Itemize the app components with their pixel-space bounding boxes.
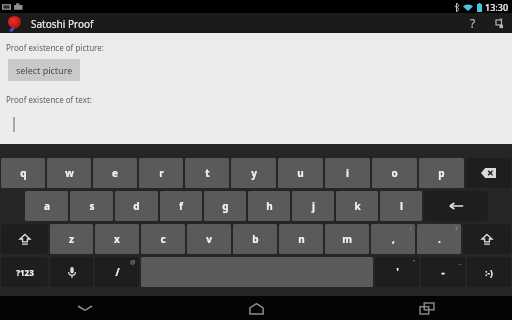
button[interactable]: enter xyxy=(424,191,488,221)
staticText: p xyxy=(438,166,445,180)
staticText: d xyxy=(133,199,140,213)
button[interactable]: z xyxy=(50,224,93,254)
staticText: , xyxy=(392,232,395,246)
staticText: l xyxy=(400,199,403,213)
staticText: _ xyxy=(459,258,462,266)
staticText: " xyxy=(413,258,416,266)
button[interactable]: v xyxy=(187,224,231,254)
button[interactable]: c xyxy=(141,224,185,254)
button[interactable]: x xyxy=(95,224,139,254)
staticText: b xyxy=(252,232,259,246)
staticText: s xyxy=(89,199,95,213)
staticText: m xyxy=(342,232,352,246)
button[interactable]: r xyxy=(139,158,183,188)
button[interactable]: e xyxy=(93,158,137,188)
button[interactable]: Recent apps xyxy=(404,296,450,320)
button[interactable]: Help xyxy=(460,13,486,33)
staticText: / xyxy=(115,265,120,279)
button[interactable]: i xyxy=(325,158,370,188)
staticText: f xyxy=(179,199,183,213)
button[interactable]: / xyxy=(95,257,139,287)
staticText: x xyxy=(114,232,120,246)
button[interactable]: y xyxy=(231,158,276,188)
staticText: u xyxy=(297,166,304,180)
button[interactable]: - xyxy=(421,257,465,287)
button[interactable]: select picture xyxy=(8,59,80,81)
staticText: ?123 xyxy=(16,267,34,278)
button[interactable]: Home xyxy=(233,296,279,320)
staticText: e xyxy=(112,166,118,180)
staticText: k xyxy=(354,199,361,213)
staticText: select picture xyxy=(16,64,73,76)
staticText: t xyxy=(205,166,210,180)
button[interactable]: ' xyxy=(375,257,419,287)
button[interactable]: More options xyxy=(486,13,512,33)
button[interactable]: . xyxy=(417,224,461,254)
staticText: j xyxy=(312,199,315,213)
staticText: w xyxy=(65,166,74,180)
button[interactable]: h xyxy=(248,191,290,221)
staticText: c xyxy=(160,232,166,246)
button[interactable]: d xyxy=(115,191,158,221)
button[interactable]: l xyxy=(380,191,422,221)
staticText: y xyxy=(251,166,257,180)
button[interactable]: q xyxy=(1,158,45,188)
button[interactable]: n xyxy=(279,224,323,254)
button[interactable]: backspace xyxy=(466,158,511,188)
button[interactable]: g xyxy=(204,191,246,221)
button[interactable]: u xyxy=(278,158,323,188)
button[interactable]: w xyxy=(47,158,91,188)
staticText: 13:30 xyxy=(485,1,509,13)
staticText: z xyxy=(69,232,74,246)
button[interactable]: :-) xyxy=(467,257,511,287)
button[interactable]: k xyxy=(336,191,378,221)
button[interactable]: s xyxy=(70,191,113,221)
staticText: g xyxy=(222,199,229,213)
staticText: n xyxy=(298,232,305,246)
button[interactable]: f xyxy=(160,191,202,221)
button[interactable]: shift xyxy=(463,224,511,254)
staticText: ! xyxy=(410,225,412,233)
staticText: Proof existence of text: xyxy=(6,94,92,105)
button[interactable]: mic xyxy=(50,257,93,287)
staticText: :-) xyxy=(485,267,493,278)
button[interactable]: o xyxy=(372,158,417,188)
staticText: @ xyxy=(130,258,136,266)
button[interactable]: m xyxy=(325,224,369,254)
staticText: o xyxy=(391,166,398,180)
staticText: r xyxy=(159,166,164,180)
button[interactable] xyxy=(0,116,512,138)
staticText: h xyxy=(266,199,273,213)
button[interactable]: ?123 xyxy=(1,257,48,287)
button[interactable]: shift xyxy=(1,224,48,254)
button[interactable]: b xyxy=(233,224,277,254)
staticText: v xyxy=(206,232,212,246)
staticText: ? xyxy=(470,15,476,31)
staticText: a xyxy=(44,199,50,213)
staticText: - xyxy=(441,265,445,279)
staticText: Proof existence of picture: xyxy=(6,42,104,53)
button[interactable]: p xyxy=(419,158,464,188)
staticText: i xyxy=(346,166,349,180)
staticText: ' xyxy=(396,265,399,279)
button[interactable]: a xyxy=(25,191,68,221)
button[interactable]: j xyxy=(292,191,334,221)
button[interactable]: Hide keyboard xyxy=(62,296,108,320)
staticText: q xyxy=(20,166,27,180)
staticText: . xyxy=(438,232,441,246)
button[interactable]: , xyxy=(371,224,415,254)
staticText: Satoshi Proof xyxy=(31,17,94,31)
staticText: ? xyxy=(455,225,458,233)
button[interactable]: t xyxy=(185,158,229,188)
